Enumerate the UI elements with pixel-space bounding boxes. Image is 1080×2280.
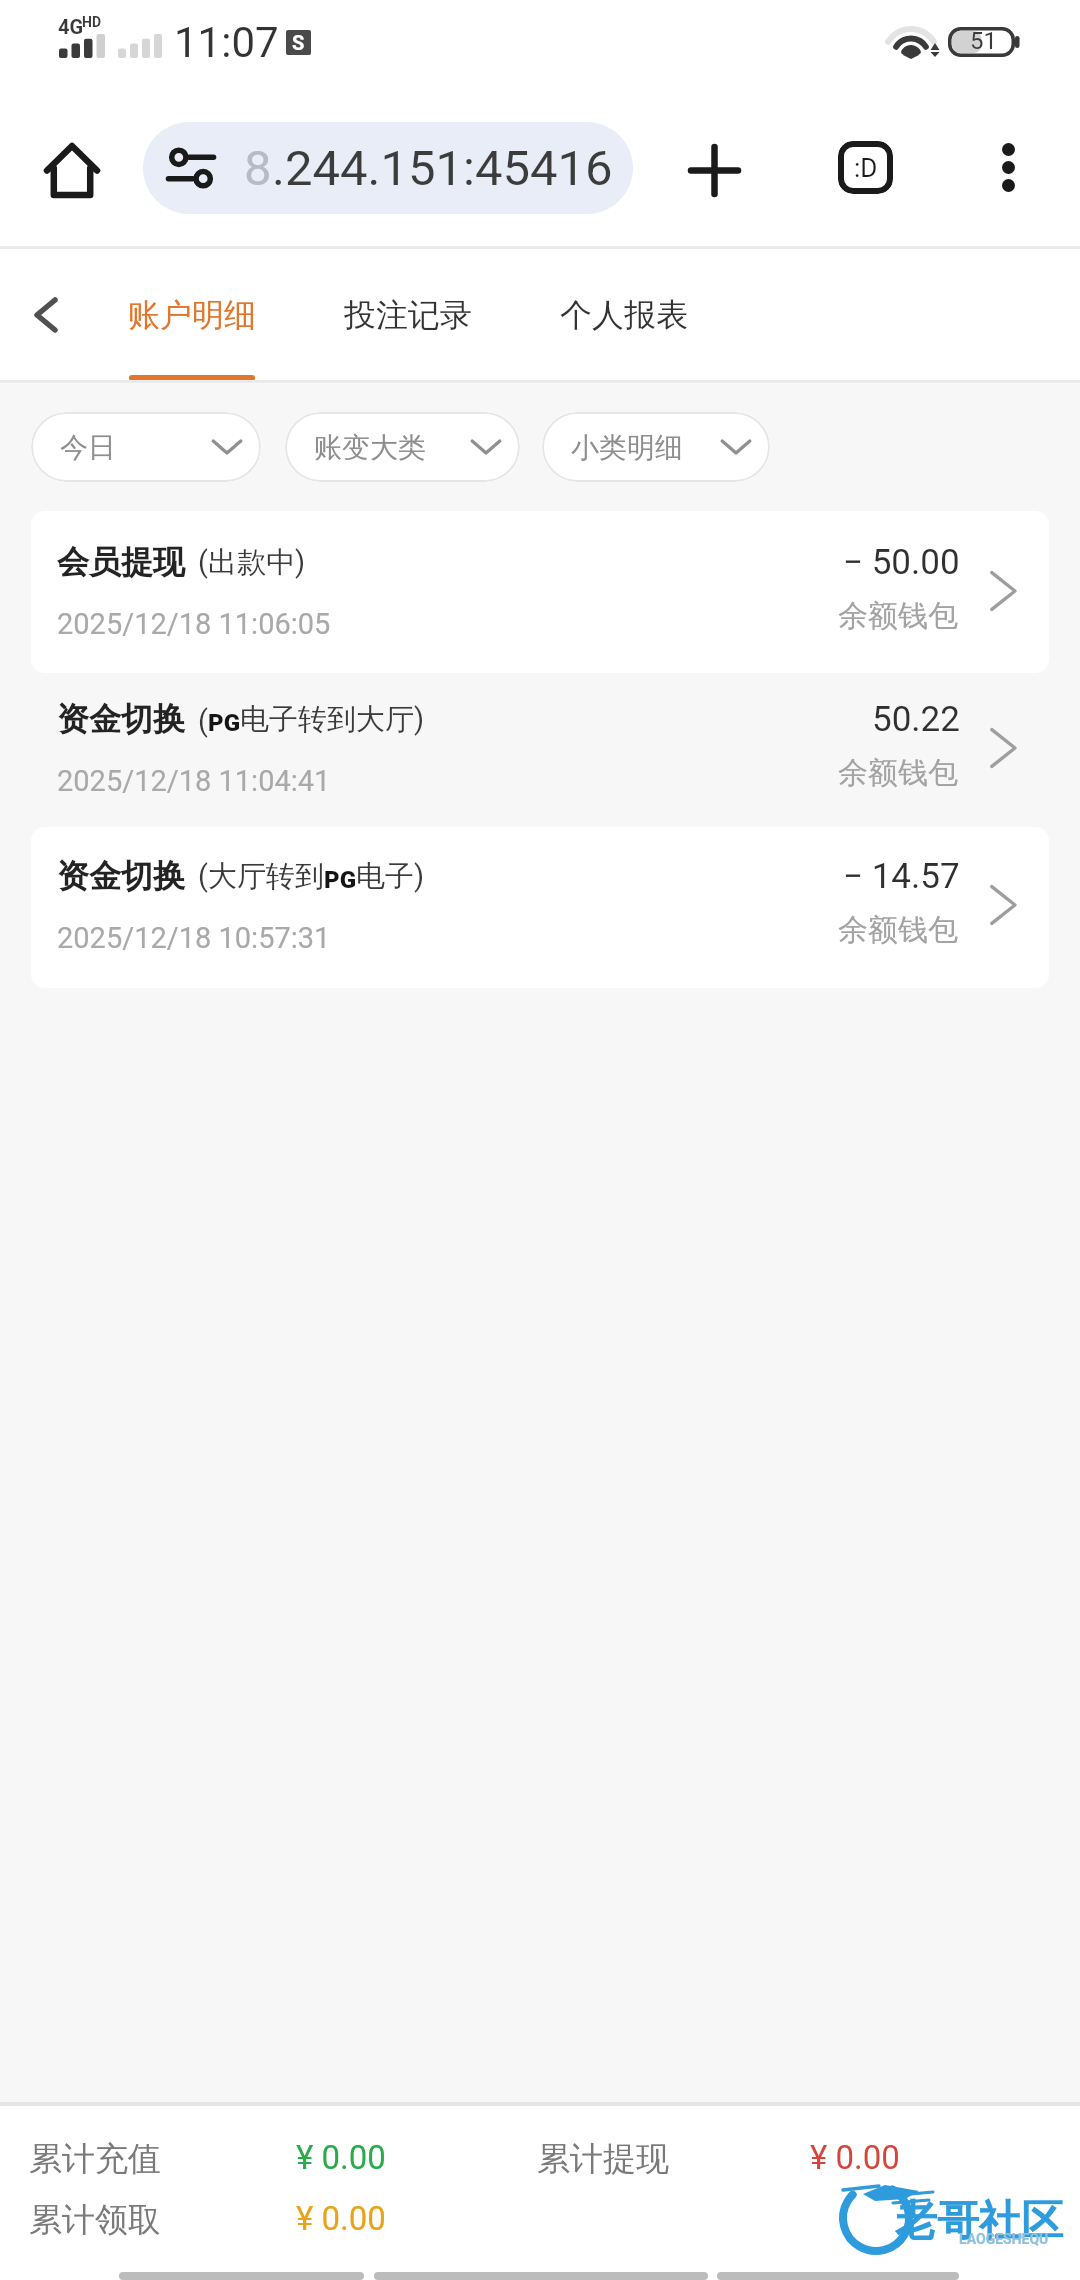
staticText: − 50.00: [843, 542, 960, 583]
staticText: 8: [244, 140, 272, 197]
button[interactable]: 今日: [31, 412, 261, 482]
staticText: (大厅转到: [198, 858, 324, 895]
staticText: 累计充值: [29, 2138, 161, 2180]
staticText: ¥ 0.00: [810, 2138, 900, 2177]
staticText: 50.22: [872, 699, 960, 740]
staticText: 2025/12/18 11:06:05: [57, 607, 331, 641]
staticText: .244.151:45416: [272, 140, 613, 197]
staticText: 电子转到大厅): [240, 701, 425, 738]
staticText: 4G: [58, 15, 84, 38]
staticText: 累计提现: [537, 2138, 669, 2180]
staticText: (: [198, 704, 208, 738]
staticText: 51: [970, 27, 997, 55]
staticText: PG: [208, 709, 240, 737]
staticText: 老哥社区: [895, 2195, 1063, 2248]
staticText: ¥ 0.00: [296, 2199, 386, 2238]
staticText: 投注记录: [344, 295, 472, 335]
button[interactable]: 小类明细: [542, 412, 770, 482]
staticText: 11:07: [174, 18, 279, 67]
staticText: 小类明细: [571, 430, 683, 465]
button[interactable]: 8: [143, 122, 633, 214]
button[interactable]: 资金切换: [31, 668, 1049, 825]
staticText: :D: [854, 153, 878, 183]
staticText: 余额钱包: [838, 754, 958, 792]
button[interactable]: More options: [956, 115, 1060, 219]
staticText: 资金切换: [57, 699, 185, 739]
staticText: − 14.57: [843, 856, 960, 897]
staticText: 2025/12/18 11:04:41: [57, 764, 331, 798]
button[interactable]: New tab: [662, 118, 766, 222]
button[interactable]: Home: [20, 118, 124, 222]
staticText: 余额钱包: [838, 911, 958, 949]
staticText: (出款中): [198, 544, 306, 581]
staticText: 账户明细: [128, 295, 256, 335]
staticText: 2025/12/18 10:57:31: [57, 921, 331, 955]
staticText: ¥ 0.00: [296, 2138, 386, 2177]
button[interactable]: 账户明细: [84, 249, 300, 383]
staticText: S: [292, 31, 305, 54]
button[interactable]: 账变大类: [285, 412, 520, 482]
staticText: 累计领取: [29, 2199, 161, 2241]
staticText: HD: [82, 14, 101, 30]
button[interactable]: Tabs: [813, 115, 917, 219]
staticText: 今日: [60, 430, 116, 465]
staticText: 账变大类: [314, 430, 426, 465]
staticText: 个人报表: [560, 295, 688, 335]
button[interactable]: Back: [0, 249, 84, 383]
staticText: PG: [324, 866, 356, 894]
button[interactable]: 投注记录: [300, 249, 516, 383]
staticText: 电子): [356, 858, 425, 895]
button[interactable]: 资金切换: [31, 825, 1049, 982]
staticText: LAOGESHEQU: [959, 2231, 1049, 2247]
staticText: 资金切换: [57, 856, 185, 896]
button[interactable]: 会员提现: [31, 511, 1049, 668]
staticText: 余额钱包: [838, 597, 958, 635]
button[interactable]: 个人报表: [516, 249, 732, 383]
staticText: 会员提现: [57, 542, 185, 582]
